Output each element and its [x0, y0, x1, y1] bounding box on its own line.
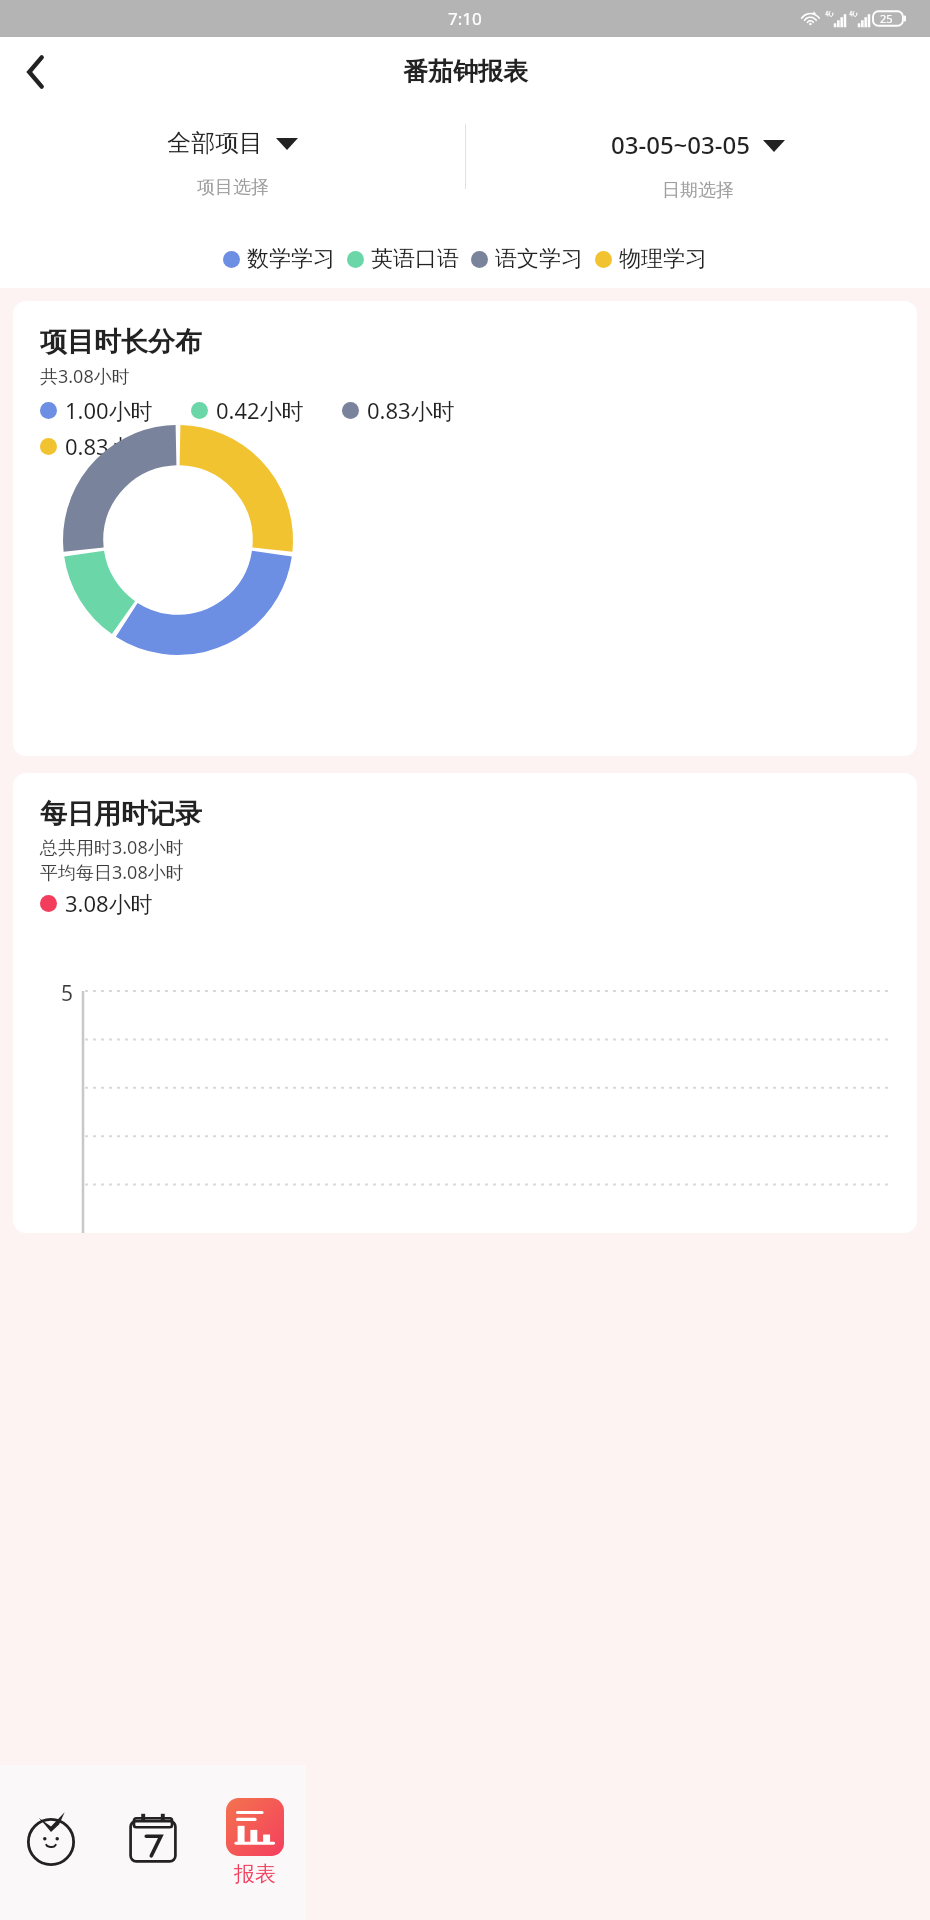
- staticText: 7:10: [448, 7, 482, 30]
- button[interactable]: Pomodoro: [0, 1765, 102, 1920]
- staticText: 项目时长分布: [40, 325, 202, 359]
- staticText: 平均每日3.08小时: [40, 860, 184, 885]
- staticText: 每日用时记录: [40, 797, 202, 831]
- button[interactable]: 全部项目: [0, 106, 465, 199]
- staticText: 25: [880, 11, 893, 26]
- staticText: 3.08小时: [65, 888, 153, 918]
- staticText: 报表: [234, 1861, 276, 1887]
- staticText: 英语口语: [371, 245, 459, 273]
- staticText: 共3.08小时: [40, 364, 130, 389]
- staticText: 全部项目: [167, 128, 263, 158]
- staticText: 5: [61, 979, 74, 1008]
- staticText: 总共用时3.08小时: [40, 835, 184, 860]
- staticText: 03-05~03-05: [611, 128, 750, 161]
- button[interactable]: Calendar: [102, 1765, 204, 1920]
- staticText: 0.83小时: [367, 395, 455, 425]
- staticText: 项目选择: [197, 176, 269, 199]
- staticText: 数学学习: [247, 245, 335, 273]
- staticText: 0.83小时: [65, 431, 153, 461]
- staticText: 1.00小时: [65, 395, 153, 425]
- staticText: 日期选择: [662, 179, 734, 202]
- staticText: 物理学习: [619, 245, 707, 273]
- button[interactable]: 报表: [204, 1765, 306, 1920]
- button[interactable]: Back: [8, 44, 64, 100]
- staticText: 语文学习: [495, 245, 583, 273]
- staticText: 番茄钟报表: [403, 56, 528, 87]
- button[interactable]: 03-05~03-05: [465, 106, 930, 202]
- staticText: 0.42小时: [216, 395, 304, 425]
